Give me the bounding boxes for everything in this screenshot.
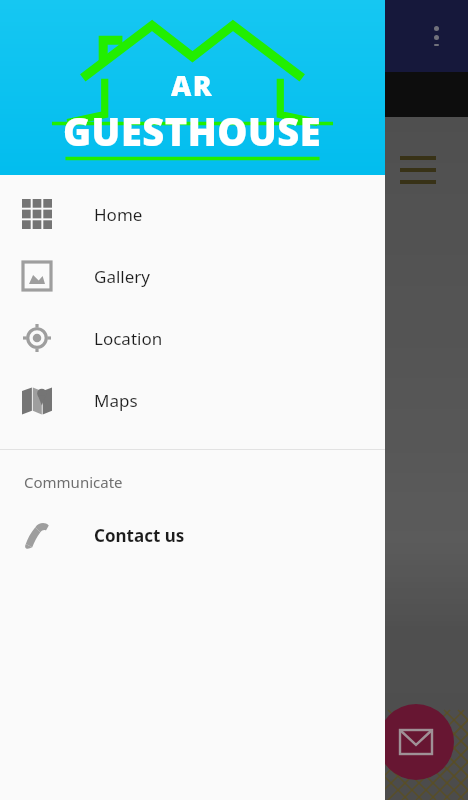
button[interactable]: Location: [0, 307, 385, 369]
staticText: Contact us: [94, 524, 185, 547]
button[interactable]: Send email: [378, 704, 454, 780]
staticText: Gallery: [94, 265, 150, 288]
button[interactable]: Maps: [0, 369, 385, 431]
button[interactable]: Gallery: [0, 245, 385, 307]
staticText: Communicate: [24, 472, 123, 492]
button[interactable]: Contact us: [0, 504, 385, 566]
staticText: Home: [94, 203, 143, 226]
staticText: AR: [171, 66, 214, 104]
staticText: GUESTHOUSE: [63, 105, 322, 157]
button[interactable]: Home: [0, 183, 385, 245]
staticText: Location: [94, 327, 163, 350]
staticText: Maps: [94, 389, 138, 412]
button[interactable]: More options: [424, 24, 448, 48]
button[interactable]: Open navigation drawer: [400, 150, 440, 190]
